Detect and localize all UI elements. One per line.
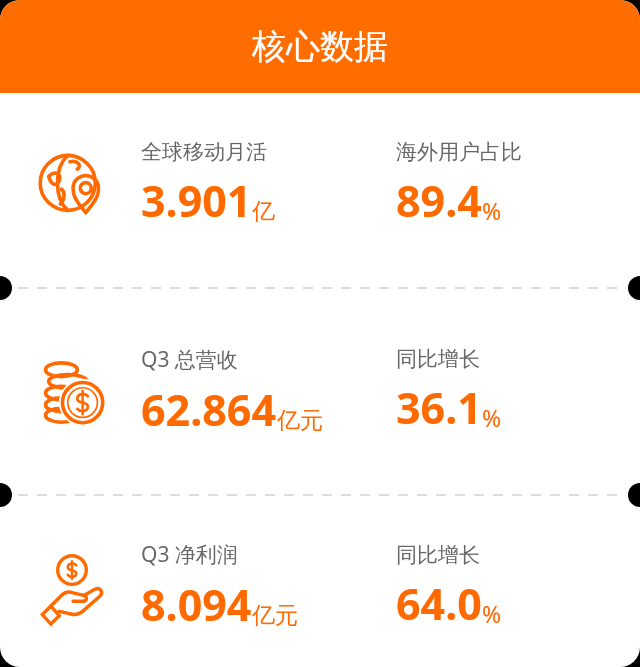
staticText: 海外用户占比: [396, 139, 522, 165]
staticText: 36.1: [396, 378, 482, 437]
staticText: 亿元: [277, 406, 323, 435]
staticText: Q3 净利润: [141, 540, 238, 569]
staticText: %: [482, 195, 502, 226]
staticText: %: [482, 402, 502, 433]
staticText: Q3 总营收: [141, 345, 238, 374]
staticText: %: [482, 598, 502, 629]
other: 总营收: [36, 356, 108, 428]
button[interactable]: 全球移动月活: [0, 93, 640, 276]
staticText: 同比增长: [396, 346, 480, 372]
staticText: 64.0: [396, 574, 482, 633]
staticText: 3.901: [141, 171, 252, 230]
staticText: 全球移动月活: [141, 139, 267, 165]
staticText: 亿: [252, 197, 275, 226]
staticText: 8.094: [141, 575, 252, 634]
button[interactable]: 净利润: [0, 507, 640, 667]
staticText: 89.4: [396, 171, 482, 230]
other: 全球移动月活: [36, 149, 108, 221]
staticText: 62.864: [141, 380, 277, 439]
button[interactable]: 核心数据: [0, 0, 640, 93]
staticText: 核心数据: [252, 25, 388, 68]
staticText: 亿元: [252, 601, 298, 630]
staticText: 同比增长: [396, 542, 480, 568]
other: 净利润: [36, 551, 108, 623]
button[interactable]: 总营收: [0, 300, 640, 483]
